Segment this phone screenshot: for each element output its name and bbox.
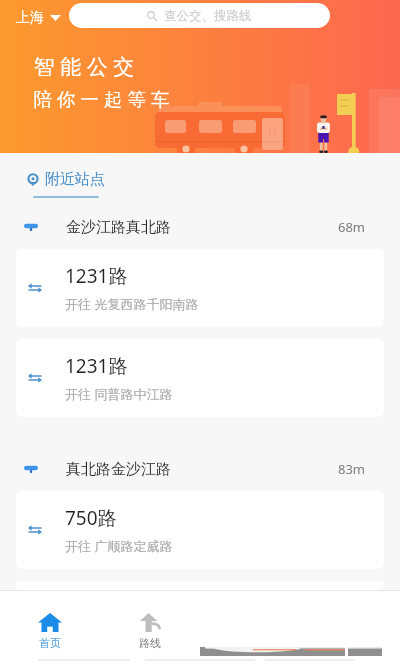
staticText: 1231路 [65, 263, 128, 289]
staticText: 1231路 [65, 353, 128, 379]
staticText: 开往 同普路中江路 [65, 385, 173, 403]
button[interactable]: 真北路金沙江路 [0, 447, 400, 491]
button[interactable]: 金沙江路真北路 [0, 205, 400, 249]
staticText: 开往 广顺路定威路 [65, 537, 173, 555]
staticText: 真北路金沙江路 [66, 460, 171, 479]
staticText: 金沙江路真北路 [66, 218, 171, 237]
staticText: 83m [338, 460, 366, 478]
button[interactable]: 附近站点 [27, 170, 105, 198]
staticText: 68m [338, 218, 366, 236]
staticText: 上海 [16, 9, 44, 27]
button[interactable]: 首页 [0, 590, 100, 666]
button[interactable]: 1231路 [16, 249, 384, 327]
staticText: 首页 [39, 636, 61, 650]
staticText: 陪你一起等车 [31, 88, 172, 111]
staticText: 路线 [139, 636, 161, 650]
staticText: 附近站点 [45, 170, 105, 189]
button[interactable]: 上海 [12, 4, 65, 32]
staticText: 750路 [65, 505, 117, 531]
staticText: 查公交、搜路线 [164, 8, 252, 24]
button[interactable]: 路线 [100, 590, 200, 666]
staticText: 开往 光复西路千阳南路 [65, 295, 199, 313]
button[interactable]: 750路 [16, 491, 384, 569]
staticText: 智能公交 [31, 54, 137, 80]
button[interactable]: 查公交、搜路线 [69, 3, 330, 28]
button[interactable]: 1231路 [16, 339, 384, 417]
